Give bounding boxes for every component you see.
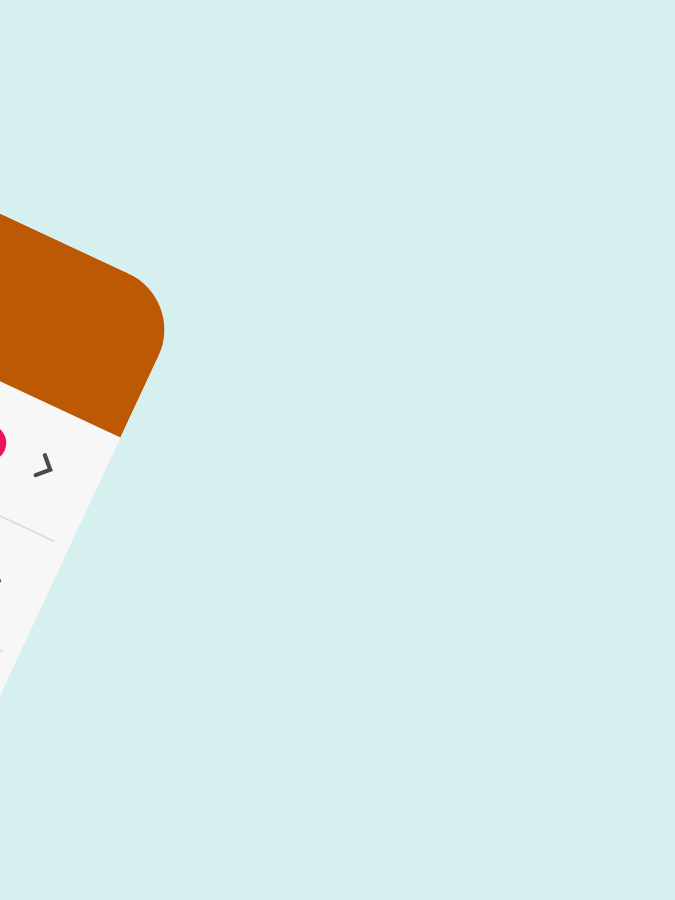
button[interactable]: Category list phone mockup [0,0,675,900]
